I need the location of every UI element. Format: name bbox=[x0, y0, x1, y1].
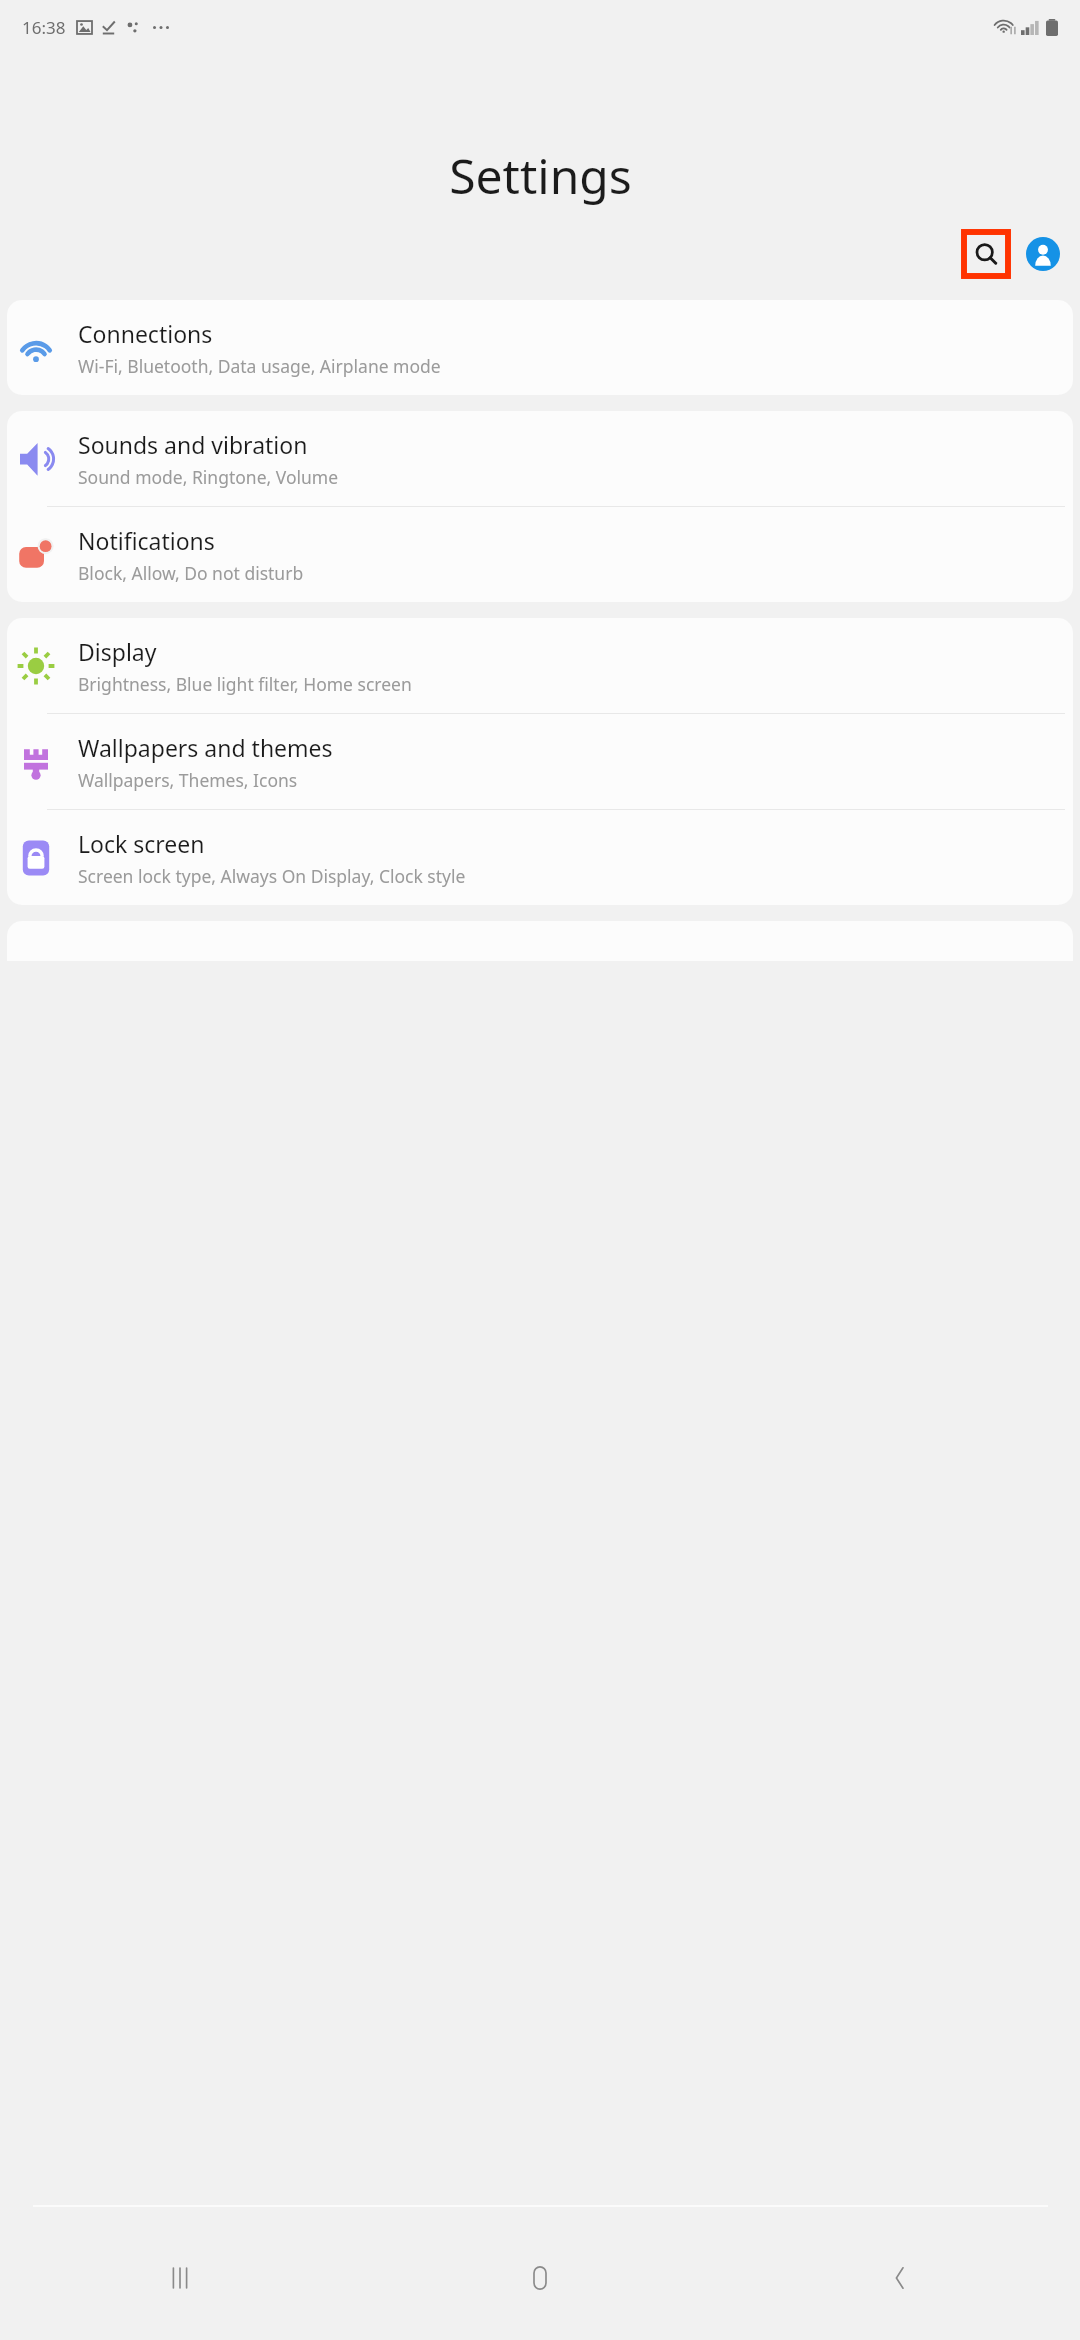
button[interactable]: Search bbox=[964, 232, 1008, 276]
staticText: Lock screen bbox=[78, 828, 205, 859]
button[interactable]: Connections bbox=[7, 300, 1073, 395]
button[interactable]: Display bbox=[7, 618, 1073, 713]
button[interactable]: Account bbox=[1026, 237, 1060, 271]
staticText: Connections bbox=[78, 318, 213, 349]
staticText: Wallpapers and themes bbox=[78, 732, 333, 763]
staticText: Notifications bbox=[78, 525, 215, 556]
staticText: Screen lock type, Always On Display, Clo… bbox=[78, 864, 466, 888]
staticText: Wi-Fi, Bluetooth, Data usage, Airplane m… bbox=[78, 354, 441, 378]
staticText: Wallpapers, Themes, Icons bbox=[78, 768, 298, 792]
staticText: Block, Allow, Do not disturb bbox=[78, 561, 304, 585]
staticText: Sound mode, Ringtone, Volume bbox=[78, 465, 339, 489]
button[interactable]: Home bbox=[360, 2215, 720, 2340]
button[interactable]: Lock screen bbox=[7, 810, 1073, 905]
button[interactable]: Sounds and vibration bbox=[7, 411, 1073, 506]
staticText: Display bbox=[78, 636, 157, 667]
staticText: Brightness, Blue light filter, Home scre… bbox=[78, 672, 412, 696]
button[interactable]: Recents bbox=[0, 2215, 360, 2340]
staticText: Settings bbox=[449, 143, 632, 208]
button[interactable]: Wallpapers and themes bbox=[7, 714, 1073, 809]
staticText: Sounds and vibration bbox=[78, 429, 308, 460]
staticText: 16:38 bbox=[22, 16, 66, 39]
button[interactable]: Notifications bbox=[7, 507, 1073, 602]
